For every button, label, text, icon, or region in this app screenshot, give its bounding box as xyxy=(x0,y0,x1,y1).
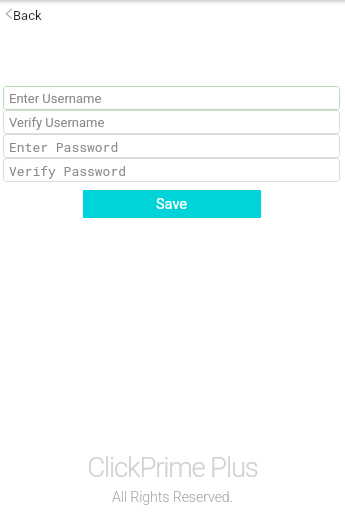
staticText: All Rights Reserved. xyxy=(112,489,233,506)
button[interactable]: Save xyxy=(83,190,261,218)
button[interactable]: Enter Username xyxy=(3,86,340,110)
staticText: Verify Username xyxy=(9,115,105,130)
staticText: Enter Password xyxy=(9,138,119,155)
staticText: Enter Username xyxy=(9,91,102,106)
staticText: Save xyxy=(156,196,188,213)
button[interactable]: Enter Password xyxy=(3,134,340,158)
staticText: ClickPrime Plus xyxy=(87,451,258,483)
button[interactable]: Back xyxy=(3,6,48,25)
button[interactable]: Verify Username xyxy=(3,110,340,134)
staticText: Back xyxy=(13,8,42,23)
button[interactable]: Verify Password xyxy=(3,158,340,182)
staticText: Verify Password xyxy=(9,162,127,179)
